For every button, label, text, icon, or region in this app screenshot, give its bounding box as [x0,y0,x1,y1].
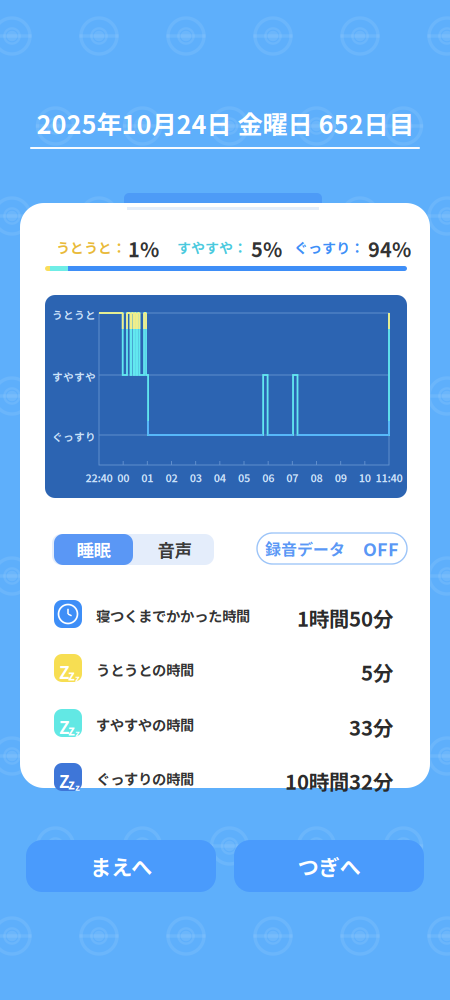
staticText: 94% [368,234,411,263]
staticText: z [68,720,75,739]
button[interactable]: 寝つくまでかかった時間 [20,587,430,641]
staticText: 1時間50分 [297,603,393,632]
staticText: 11:40 [375,470,402,485]
staticText: すやすや [52,369,96,384]
staticText: ぐっすりの時間 [96,768,194,789]
staticText: つぎへ [297,851,360,881]
staticText: 08 [310,470,322,485]
staticText: うとうとの時間 [96,659,194,680]
staticText: まえへ [90,851,152,881]
staticText: 06 [262,470,274,485]
staticText: 1% [128,234,159,263]
staticText: Z [59,768,70,793]
staticText: 寝つくまでかかった時間 [96,605,250,626]
staticText: 10 [359,470,371,485]
staticText: 5分 [361,657,393,686]
staticText: z [68,774,75,793]
staticText: 05 [238,470,250,485]
staticText: 02 [165,470,177,485]
staticText: 5% [251,234,282,263]
staticText: z [75,780,80,793]
staticText: 22:40 [85,470,112,485]
staticText: ぐっすり [52,429,96,444]
staticText: z [75,726,80,739]
staticText: 04 [214,470,226,485]
staticText: 録音データ [265,537,345,560]
staticText: 33分 [349,712,393,741]
staticText: Z [59,659,70,684]
staticText: うとうと： [56,237,126,257]
button[interactable]: Z [20,641,430,695]
staticText: 03 [190,470,202,485]
button[interactable]: 録音データ [257,533,407,564]
staticText: 01 [141,470,153,485]
staticText: z [68,665,75,684]
staticText: 00 [117,470,129,485]
staticText: 09 [335,470,347,485]
staticText: 音声 [157,537,191,562]
staticText: Z [59,714,70,739]
staticText: 睡眠 [76,537,110,562]
button[interactable]: つぎへ [234,840,424,892]
button[interactable]: 音声 [135,534,214,565]
staticText: すやすやの時間 [96,714,194,735]
staticText: OFF [363,535,399,562]
staticText: 07 [286,470,298,485]
button[interactable]: 睡眠 [54,534,133,565]
staticText: ぐっすり： [294,237,364,257]
staticText: 2025年10月24日 金曜日 652日目 [36,105,413,141]
button[interactable]: Z [20,696,430,750]
staticText: 10時間32分 [285,766,393,795]
staticText: うとうと [52,307,96,322]
staticText: すやすや： [177,237,247,257]
button[interactable]: まえへ [26,840,216,892]
staticText: z [75,671,80,684]
button[interactable]: Z [20,750,430,804]
